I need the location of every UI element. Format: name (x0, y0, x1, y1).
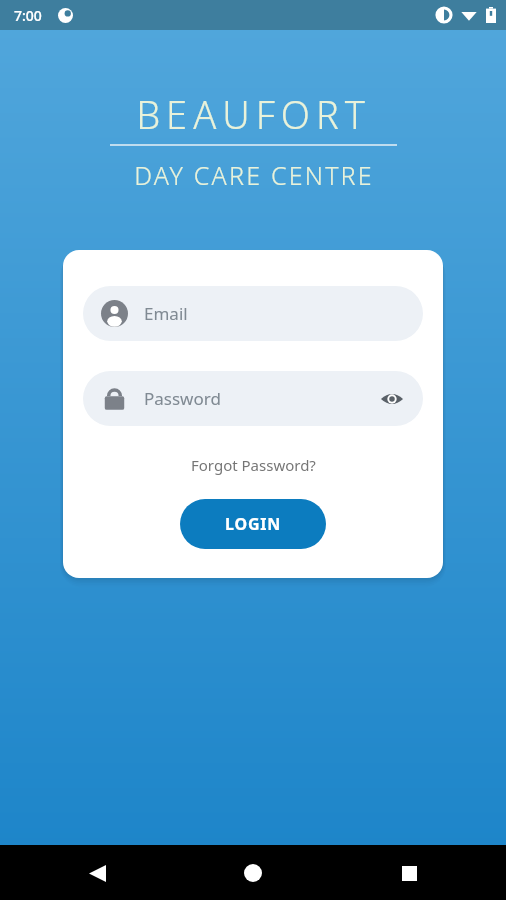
button[interactable]: Recent apps (386, 850, 432, 896)
button[interactable]: Password (83, 371, 423, 426)
button[interactable]: Back (74, 850, 120, 896)
staticText: 7:00 (14, 6, 42, 25)
staticText: Email (144, 302, 188, 325)
staticText: Password (144, 387, 221, 410)
staticText: Forgot Password? (191, 455, 316, 475)
staticText: BEAUFORT (136, 88, 371, 140)
button[interactable]: Email (83, 286, 423, 341)
button[interactable]: Home (230, 850, 276, 896)
button[interactable]: LOGIN (180, 499, 326, 549)
staticText: LOGIN (225, 513, 282, 535)
staticText: DAY CARE CENTRE (134, 158, 374, 192)
button[interactable]: Show password (377, 384, 407, 414)
button[interactable]: Forgot Password? (185, 453, 322, 477)
